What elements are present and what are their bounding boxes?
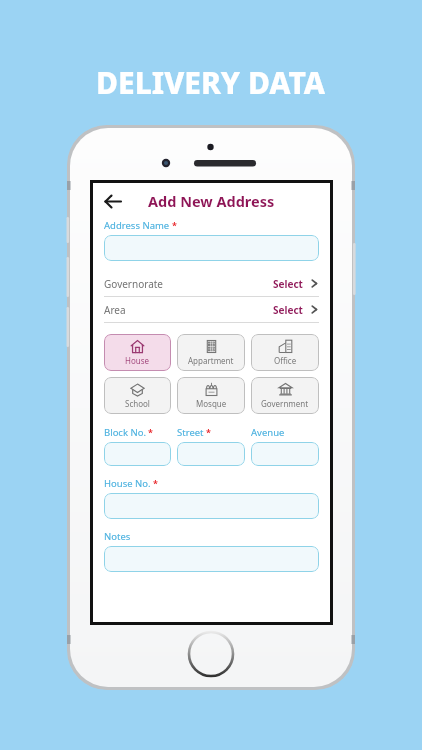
- staticText: *: [148, 426, 153, 438]
- staticText: *: [206, 426, 211, 438]
- button[interactable]: [177, 442, 245, 466]
- staticText: Government: [261, 398, 309, 409]
- button[interactable]: House: [104, 334, 171, 371]
- staticText: Address Name: [104, 219, 170, 232]
- button[interactable]: Mosque: [177, 377, 245, 414]
- button[interactable]: Governorate: [104, 271, 319, 297]
- staticText: *: [153, 477, 158, 489]
- staticText: Add New Address: [148, 191, 275, 211]
- button[interactable]: [104, 493, 319, 519]
- button[interactable]: Office: [251, 334, 319, 371]
- staticText: Street: [177, 426, 204, 439]
- staticText: House No.: [104, 477, 151, 490]
- staticText: Mosque: [196, 398, 227, 409]
- button[interactable]: [104, 442, 171, 466]
- button[interactable]: [104, 546, 319, 572]
- staticText: Block No.: [104, 426, 146, 439]
- button[interactable]: [251, 442, 319, 466]
- staticText: Select: [273, 303, 303, 317]
- staticText: Notes: [104, 530, 131, 543]
- staticText: Appartment: [188, 355, 234, 366]
- button[interactable]: Area: [104, 297, 319, 323]
- staticText: Area: [104, 303, 126, 317]
- button[interactable]: School: [104, 377, 171, 414]
- staticText: Avenue: [251, 426, 285, 439]
- staticText: DELIVERY DATA: [96, 62, 326, 103]
- button[interactable]: Government: [251, 377, 319, 414]
- staticText: School: [125, 398, 150, 409]
- staticText: House: [125, 355, 150, 366]
- button[interactable]: [104, 235, 319, 261]
- staticText: Governorate: [104, 277, 163, 291]
- button[interactable]: Appartment: [177, 334, 245, 371]
- staticText: Select: [273, 277, 303, 291]
- staticText: Office: [274, 355, 297, 366]
- button[interactable]: Back: [99, 188, 125, 214]
- staticText: *: [172, 219, 177, 231]
